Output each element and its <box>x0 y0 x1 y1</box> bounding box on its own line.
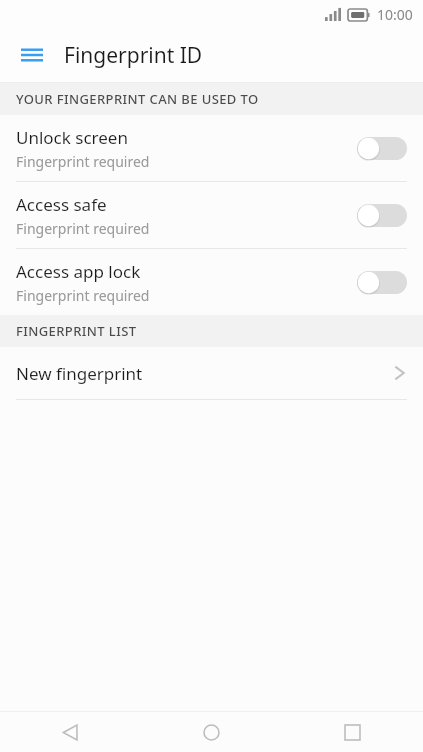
button[interactable]: Unlock screen <box>0 115 423 181</box>
button[interactable]: Back <box>0 712 141 752</box>
staticText: New fingerprint <box>16 362 394 385</box>
button[interactable]: Menu <box>12 35 52 75</box>
staticText: Fingerprint ID <box>64 41 203 70</box>
staticText: Access safe <box>16 193 107 216</box>
staticText: Fingerprint required <box>16 286 150 305</box>
staticText: 10:00 <box>377 5 413 24</box>
staticText: FINGERPRINT LIST <box>16 322 137 340</box>
button[interactable]: Toggle <box>357 201 407 229</box>
button[interactable]: Home <box>141 712 282 752</box>
button[interactable]: Toggle <box>357 134 407 162</box>
button[interactable]: Toggle <box>357 268 407 296</box>
staticText: YOUR FINGERPRINT CAN BE USED TO <box>16 90 259 108</box>
button[interactable]: New fingerprint <box>0 347 423 399</box>
button[interactable]: Access safe <box>0 182 423 248</box>
button[interactable]: Recent apps <box>282 712 423 752</box>
staticText: Unlock screen <box>16 126 128 149</box>
button[interactable]: Access app lock <box>0 249 423 315</box>
staticText: Access app lock <box>16 260 141 283</box>
staticText: Fingerprint required <box>16 152 150 171</box>
staticText: Fingerprint required <box>16 219 150 238</box>
